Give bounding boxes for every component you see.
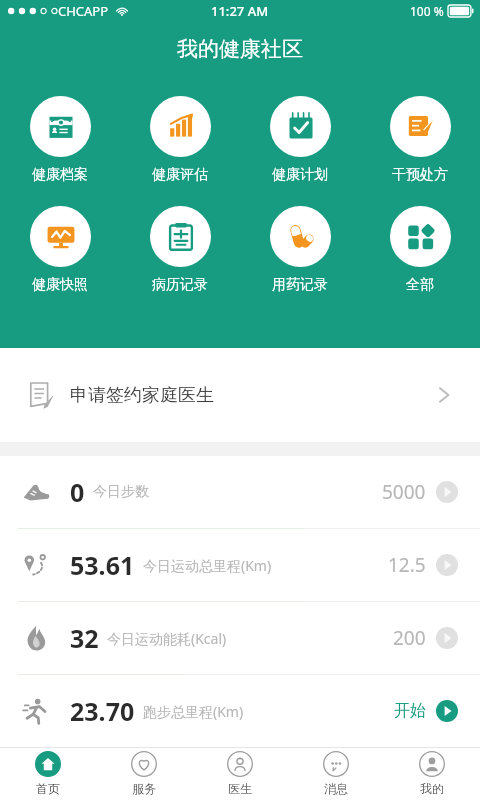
- staticText: 今日步数: [93, 483, 149, 501]
- button[interactable]: 消息: [288, 747, 384, 800]
- staticText: 12.5: [388, 552, 426, 578]
- button[interactable]: 医生: [192, 747, 288, 800]
- other: Start: [436, 554, 458, 576]
- staticText: 消息: [324, 781, 348, 796]
- button[interactable]: 23.70: [0, 675, 480, 747]
- staticText: 用药记录: [272, 276, 328, 294]
- other: Start: [436, 627, 458, 649]
- button[interactable]: 申请签约家庭医生: [0, 348, 480, 442]
- staticText: 开始: [394, 701, 426, 721]
- button[interactable]: 用药记录: [240, 206, 360, 294]
- staticText: 我的健康社区: [177, 36, 303, 62]
- staticText: 0: [70, 475, 85, 509]
- button[interactable]: 健康评估: [120, 96, 240, 184]
- button[interactable]: 0: [0, 456, 480, 528]
- staticText: 跑步总里程(Km): [143, 702, 244, 721]
- button[interactable]: 健康计划: [240, 96, 360, 184]
- staticText: 11:27 AM: [211, 2, 269, 20]
- staticText: 健康评估: [152, 166, 208, 184]
- staticText: 53.61: [70, 548, 135, 582]
- staticText: 全部: [406, 276, 434, 294]
- staticText: 200: [393, 625, 426, 651]
- button[interactable]: 53.61: [0, 529, 480, 601]
- staticText: 健康快照: [32, 276, 88, 294]
- staticText: 23.70: [70, 694, 135, 728]
- staticText: 健康计划: [272, 166, 328, 184]
- other: Start: [436, 481, 458, 503]
- button[interactable]: 32: [0, 602, 480, 674]
- staticText: 服务: [132, 781, 156, 796]
- staticText: 病历记录: [152, 276, 208, 294]
- staticText: 干预处方: [392, 166, 448, 184]
- staticText: 今日运动能耗(Kcal): [107, 629, 227, 648]
- staticText: CHCAPP: [58, 2, 109, 20]
- staticText: 申请签约家庭医生: [70, 384, 214, 407]
- staticText: 5000: [382, 479, 426, 505]
- staticText: 今日运动总里程(Km): [143, 556, 272, 575]
- staticText: 100 %: [410, 3, 444, 19]
- button[interactable]: 干预处方: [360, 96, 480, 184]
- button[interactable]: 全部: [360, 206, 480, 294]
- staticText: 我的: [420, 781, 444, 796]
- button[interactable]: 首页: [0, 747, 96, 800]
- staticText: 医生: [228, 781, 252, 796]
- staticText: 32: [70, 621, 99, 655]
- staticText: 首页: [36, 781, 60, 796]
- other: Start: [436, 700, 458, 722]
- button[interactable]: 我的: [384, 747, 480, 800]
- button[interactable]: 健康档案: [0, 96, 120, 184]
- button[interactable]: 病历记录: [120, 206, 240, 294]
- button[interactable]: 健康快照: [0, 206, 120, 294]
- button[interactable]: 服务: [96, 747, 192, 800]
- staticText: 健康档案: [32, 166, 88, 184]
